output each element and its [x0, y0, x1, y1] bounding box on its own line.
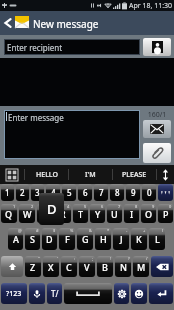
- button[interactable]: 3: [31, 184, 44, 201]
- button[interactable]: ?123: [1, 283, 27, 304]
- staticText: 1: [13, 204, 16, 209]
- button[interactable]: [158, 184, 173, 201]
- button[interactable]: Enter recipient: [4, 39, 140, 55]
- staticText: X: [48, 261, 54, 273]
- button[interactable]: 9: [141, 204, 156, 223]
- button[interactable]: I'M: [69, 165, 112, 184]
- staticText: K: [136, 233, 142, 245]
- button[interactable]: 1: [1, 184, 14, 201]
- button[interactable]: [149, 283, 173, 304]
- staticText: !: [110, 256, 112, 261]
- button[interactable]: PLEASE: [113, 165, 156, 184]
- button[interactable]: [151, 256, 173, 277]
- staticText: 2: [20, 187, 25, 198]
- staticText: 6: [101, 204, 104, 209]
- button[interactable]: T/: [47, 283, 62, 304]
- button[interactable]: #: [25, 228, 40, 250]
- button[interactable]: 6: [90, 204, 105, 223]
- button[interactable]: :: [61, 256, 77, 277]
- staticText: D: [47, 200, 57, 218]
- button[interactable]: 8: [110, 184, 124, 201]
- staticText: 9: [152, 204, 155, 209]
- button[interactable]: ;: [79, 256, 95, 277]
- staticText: Enter message: [8, 112, 64, 123]
- button[interactable]: -: [113, 228, 129, 250]
- button[interactable]: 3: [37, 204, 53, 223]
- staticText: W: [23, 208, 32, 220]
- button[interactable]: @: [8, 228, 23, 250]
- button[interactable]: (: [149, 228, 165, 250]
- button[interactable]: $: [42, 228, 57, 250]
- button[interactable]: 0: [158, 204, 173, 223]
- staticText: D: [46, 233, 53, 245]
- staticText: Apr 18, 11:30: [129, 1, 173, 11]
- staticText: Y: [95, 208, 101, 220]
- button[interactable]: [29, 283, 45, 304]
- staticText: 5: [84, 204, 87, 209]
- button[interactable]: Expand suggestions: [157, 165, 174, 184]
- staticText: I: [130, 208, 134, 220]
- button[interactable]: Enter message: [4, 110, 140, 159]
- staticText: -: [126, 228, 128, 233]
- staticText: Q: [5, 208, 13, 220]
- staticText: ?: [128, 256, 130, 261]
- button[interactable]: 5: [62, 184, 76, 201]
- button[interactable]: 6: [78, 184, 92, 201]
- staticText: 6: [83, 187, 88, 198]
- staticText: 8: [135, 204, 138, 209]
- staticText: P: [163, 208, 169, 220]
- staticText: 3: [35, 187, 40, 198]
- button[interactable]: +: [131, 228, 147, 250]
- button[interactable]: 9: [126, 184, 140, 201]
- staticText: 0: [147, 187, 152, 198]
- staticText: B: [102, 261, 108, 273]
- button[interactable]: 0: [142, 184, 156, 201]
- button[interactable]: 7: [94, 184, 108, 201]
- staticText: A: [13, 233, 19, 245]
- button[interactable]: ": [25, 256, 41, 277]
- staticText: /: [146, 256, 148, 261]
- staticText: 8: [115, 187, 120, 198]
- button[interactable]: !: [97, 256, 113, 277]
- button[interactable]: 1: [1, 204, 17, 223]
- staticText: New message: [33, 17, 99, 31]
- button[interactable]: %: [59, 228, 75, 250]
- staticText: $: [53, 228, 56, 233]
- button[interactable]: [131, 283, 147, 304]
- button[interactable]: [114, 283, 129, 304]
- staticText: G: [82, 233, 89, 245]
- button[interactable]: Send: [143, 120, 171, 138]
- staticText: PLEASE: [122, 170, 147, 180]
- button[interactable]: 7: [107, 204, 122, 223]
- staticText: ': [57, 256, 58, 261]
- button[interactable]: Attach: [143, 143, 171, 163]
- button[interactable]: ': [43, 256, 59, 277]
- button[interactable]: Contacts: [143, 38, 171, 56]
- staticText: F: [65, 233, 70, 245]
- staticText: 7: [118, 204, 121, 209]
- button[interactable]: 5: [73, 204, 88, 223]
- staticText: 0: [169, 204, 172, 209]
- staticText: 5: [67, 187, 72, 198]
- button[interactable]: /: [133, 256, 149, 277]
- staticText: T/: [51, 288, 59, 299]
- button[interactable]: *: [95, 228, 111, 250]
- staticText: *: [107, 228, 110, 233]
- button[interactable]: 4: [55, 204, 71, 223]
- button[interactable]: 8: [124, 204, 139, 223]
- button[interactable]: [64, 283, 112, 304]
- button[interactable]: &: [77, 228, 93, 250]
- button[interactable]: Back: [0, 11, 174, 35]
- button[interactable]: 2: [16, 184, 29, 201]
- button[interactable]: [1, 256, 23, 277]
- button[interactable]: ?: [115, 256, 131, 277]
- button[interactable]: 4: [46, 184, 60, 201]
- button[interactable]: Keyboard layout: [0, 165, 24, 184]
- staticText: E: [42, 208, 48, 220]
- staticText: R: [60, 208, 66, 220]
- button[interactable]: HELLO: [25, 165, 68, 184]
- staticText: M: [137, 261, 146, 273]
- staticText: 4: [51, 187, 56, 198]
- button[interactable]: 2: [19, 204, 35, 223]
- staticText: 2: [31, 204, 34, 209]
